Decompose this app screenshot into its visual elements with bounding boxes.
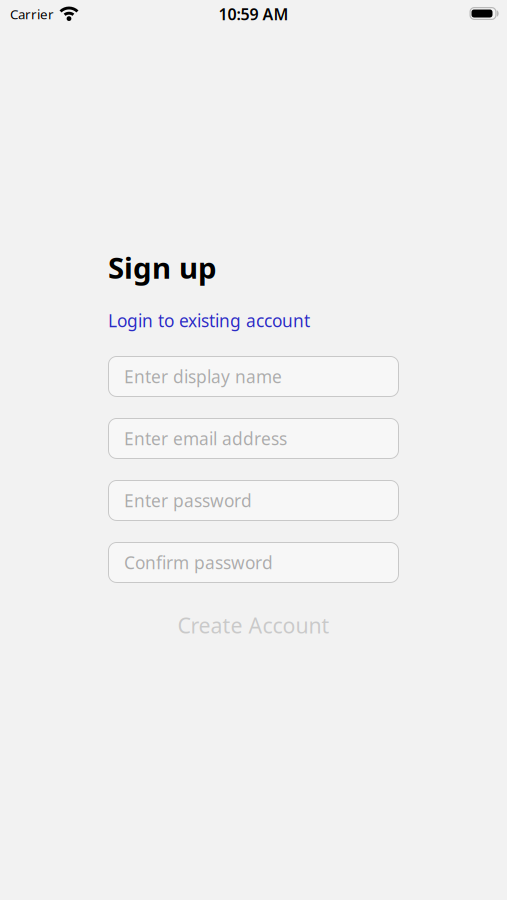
staticText: Enter display name [124, 365, 282, 388]
button[interactable]: Confirm password [108, 542, 399, 583]
button[interactable]: Login to existing account [108, 309, 310, 332]
button[interactable]: Enter display name [108, 356, 399, 397]
staticText: Enter password [124, 489, 252, 512]
staticText: 10:59 AM [218, 3, 288, 25]
staticText: Carrier [10, 5, 54, 23]
staticText: Enter email address [124, 427, 287, 450]
button[interactable]: Enter email address [108, 418, 399, 459]
button[interactable]: Create Account [177, 611, 329, 639]
staticText: Create Account [177, 611, 329, 639]
staticText: Sign up [108, 248, 217, 287]
button[interactable]: Enter password [108, 480, 399, 521]
staticText: Login to existing account [108, 309, 310, 332]
staticText: Confirm password [124, 551, 273, 574]
